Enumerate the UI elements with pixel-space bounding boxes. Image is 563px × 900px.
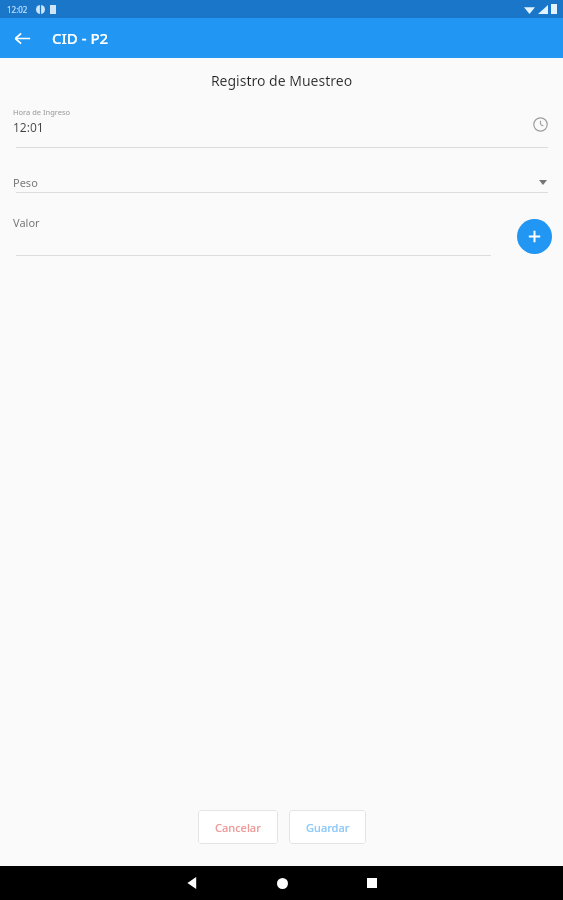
staticText: CID - P2 bbox=[52, 28, 109, 48]
staticText: Hora de Ingreso bbox=[13, 107, 71, 117]
button[interactable]: Home bbox=[262, 866, 302, 900]
button[interactable]: Cancelar bbox=[198, 810, 278, 844]
staticText: 12:01 bbox=[13, 119, 44, 135]
button[interactable]: Peso bbox=[0, 172, 563, 192]
button[interactable]: Hora de Ingreso bbox=[0, 107, 563, 147]
button[interactable]: Add bbox=[517, 219, 552, 254]
staticText: Valor bbox=[13, 215, 40, 230]
button[interactable]: Recent apps bbox=[352, 866, 392, 900]
button[interactable]: Back bbox=[172, 866, 212, 900]
button[interactable]: Back bbox=[8, 24, 36, 52]
staticText: Registro de Muestreo bbox=[0, 71, 563, 90]
button[interactable]: Select time bbox=[529, 113, 551, 135]
button[interactable]: Guardar bbox=[289, 810, 366, 844]
button[interactable]: Valor bbox=[0, 213, 501, 256]
staticText: Cancelar bbox=[215, 820, 261, 835]
staticText: 12:02 bbox=[7, 4, 28, 15]
staticText: Guardar bbox=[306, 820, 350, 835]
staticText: Peso bbox=[13, 175, 38, 190]
